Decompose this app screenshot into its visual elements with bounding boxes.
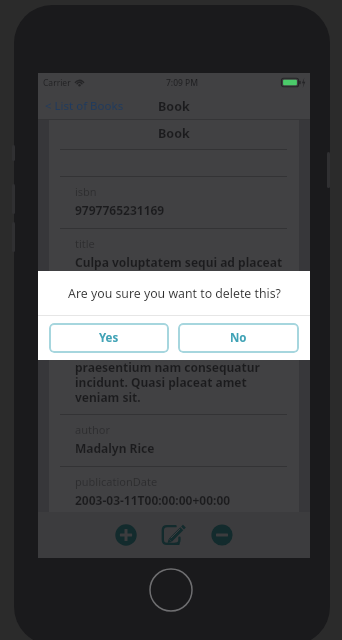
button[interactable]: Delete [207, 520, 237, 550]
staticText: < List of Books [45, 98, 124, 114]
button[interactable]: < List of Books [45, 92, 124, 120]
staticText: Culpa voluptatem sequi ad placeat quia d… [75, 254, 292, 406]
staticText: Are you sure you want to delete this? [68, 285, 281, 302]
button[interactable]: publicationDate [38, 467, 310, 512]
staticText: Carrier [43, 77, 71, 89]
staticText: Book [158, 98, 190, 115]
staticText: publicationDate [75, 474, 158, 489]
staticText: 7:09 PM [166, 77, 199, 89]
staticText: No [230, 330, 247, 346]
staticText: title [75, 236, 95, 251]
staticText: author [75, 422, 110, 437]
staticText: Book [158, 125, 190, 142]
button[interactable]: title [38, 229, 310, 414]
button[interactable]: Edit [159, 520, 189, 550]
staticText: Yes [99, 330, 119, 346]
staticText: 9797765231169 [75, 202, 165, 218]
button[interactable]: Yes [49, 323, 169, 353]
button[interactable]: isbn [38, 177, 310, 228]
staticText: isbn [75, 184, 97, 199]
staticText: Madalyn Rice [75, 440, 155, 456]
button[interactable]: author [38, 415, 310, 466]
button[interactable]: No [178, 323, 299, 353]
staticText: 2003-03-11T00:00:00+00:00 [75, 492, 231, 508]
button[interactable]: Add [111, 520, 141, 550]
